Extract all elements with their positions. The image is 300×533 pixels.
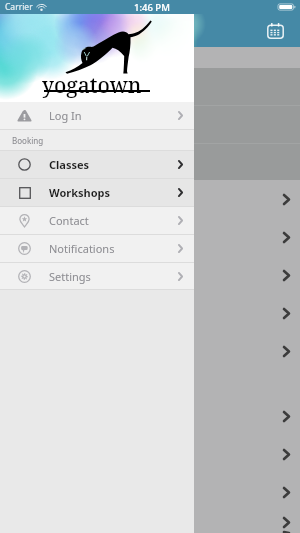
button[interactable] <box>0 256 300 294</box>
button[interactable] <box>0 511 300 533</box>
button[interactable] <box>0 218 300 256</box>
staticText: Notifications <box>49 241 115 256</box>
button[interactable] <box>0 397 300 435</box>
button[interactable] <box>0 180 300 218</box>
staticText: Classes <box>49 157 90 172</box>
staticText: Log In <box>49 108 82 123</box>
button[interactable]: Calendar <box>262 17 288 43</box>
button[interactable] <box>0 294 300 332</box>
button[interactable] <box>0 332 300 370</box>
staticText: 1:46 PM <box>134 1 170 14</box>
button[interactable]: Notifications <box>0 235 194 262</box>
button[interactable] <box>0 435 300 473</box>
staticText: Contact <box>49 213 89 228</box>
button[interactable]: Settings <box>0 263 194 289</box>
staticText: Carrier <box>5 1 33 13</box>
button[interactable] <box>0 473 300 511</box>
button[interactable]: Classes <box>0 151 194 178</box>
button[interactable]: Log In <box>0 102 194 129</box>
staticText: Booking <box>12 135 44 146</box>
staticText: Settings <box>49 269 91 284</box>
button[interactable]: Workshops <box>0 179 194 206</box>
staticText: yogatown <box>42 71 142 100</box>
staticText: Workshops <box>49 185 111 200</box>
button[interactable]: Contact <box>0 207 194 234</box>
